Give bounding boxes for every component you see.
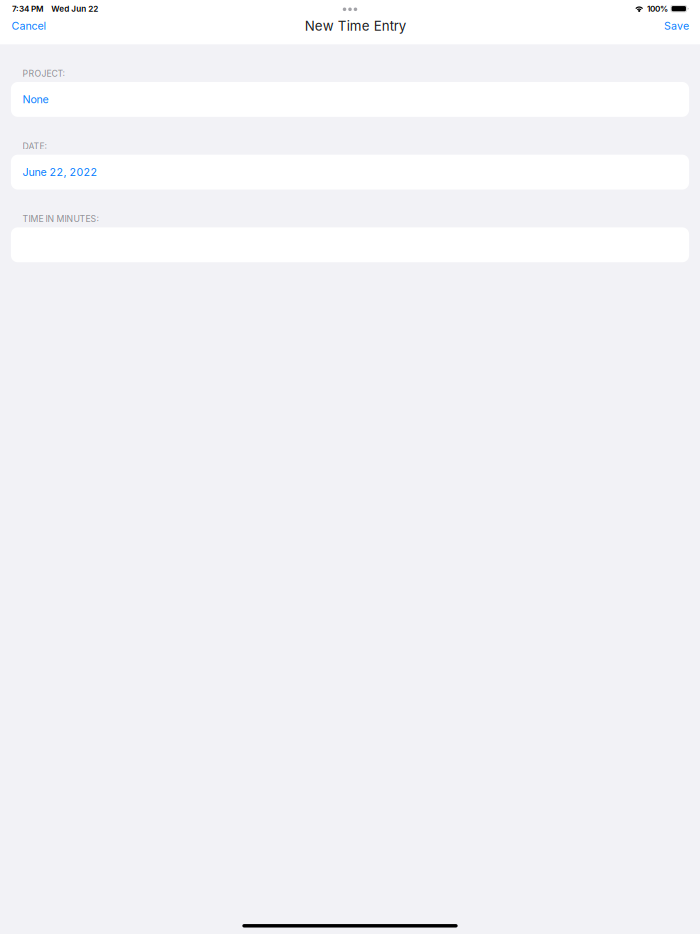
staticText: TIME IN MINUTES: <box>23 214 99 224</box>
button[interactable]: Save <box>659 13 694 38</box>
staticText: Cancel <box>12 19 47 32</box>
staticText: 7:34 PM <box>12 4 44 14</box>
staticText: PROJECT: <box>23 68 65 79</box>
staticText: Save <box>664 19 689 32</box>
button[interactable]: June 22, 2022 <box>11 155 689 190</box>
staticText: Wed Jun 22 <box>51 4 98 14</box>
staticText: DATE: <box>23 141 47 151</box>
staticText: June 22, 2022 <box>23 166 98 179</box>
button[interactable]: Cancel <box>7 13 51 38</box>
staticText: New Time Entry <box>305 18 406 34</box>
staticText: None <box>23 93 49 106</box>
button[interactable]: None <box>11 82 689 117</box>
staticText: 100% <box>647 4 668 14</box>
